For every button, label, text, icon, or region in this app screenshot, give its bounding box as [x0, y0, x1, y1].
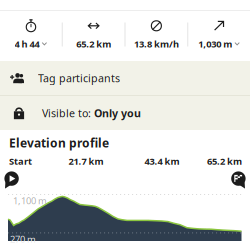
staticText: 270 m [10, 233, 36, 245]
staticText: Start [9, 155, 32, 167]
button[interactable]: 1,030 m [188, 13, 250, 56]
button[interactable]: Visible to: [0, 96, 250, 130]
staticText: 1,030 m [198, 38, 232, 50]
staticText: 4 h 44 [15, 38, 40, 50]
button[interactable]: 65.2 km [63, 13, 125, 56]
staticText: 65.2 km [76, 38, 111, 50]
button[interactable]: 13.8 km/h [125, 13, 187, 56]
button[interactable]: 4 h 44 [0, 13, 62, 56]
staticText: 43.4 km [144, 155, 179, 167]
staticText: Only you [94, 106, 141, 120]
staticText: Visible to: [42, 106, 94, 120]
staticText: 21.7 km [68, 155, 103, 167]
staticText: Tag participants [38, 71, 120, 85]
staticText: 1,100 m [13, 194, 47, 207]
button[interactable]: Tag participants [0, 61, 250, 95]
staticText: Elevation profile [9, 135, 109, 151]
staticText: 65.2 km [207, 155, 242, 167]
staticText: 13.8 km/h [134, 38, 179, 50]
